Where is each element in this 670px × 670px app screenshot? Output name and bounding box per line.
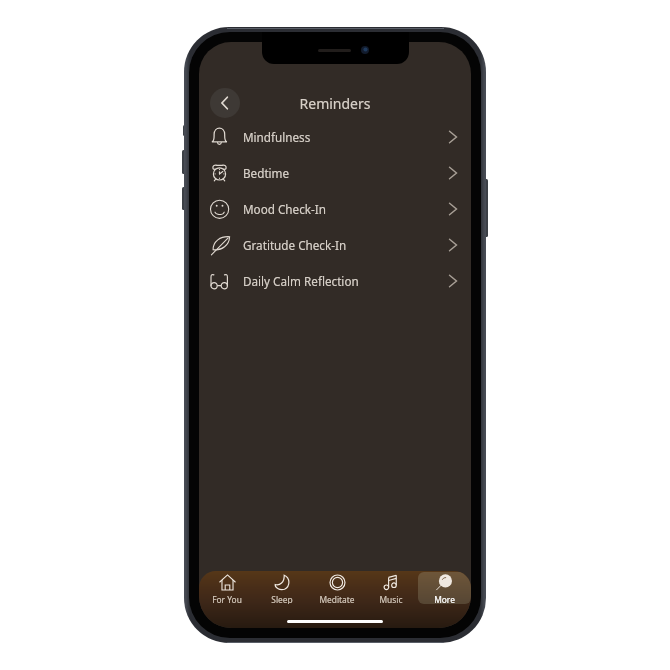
button[interactable]: Mindfulness [199,119,471,155]
button[interactable]: Sleep [255,572,309,604]
button[interactable]: Meditate [310,572,363,604]
staticText: Music [379,594,403,604]
staticText: Sleep [271,594,293,604]
button[interactable]: Bedtime [199,155,471,191]
button[interactable]: Daily Calm Reflection [199,263,471,299]
staticText: Reminders [199,94,471,113]
staticText: For You [212,594,242,604]
button[interactable]: More [418,572,471,604]
button[interactable]: Gratitude Check-In [199,227,471,263]
staticText: Meditate [319,594,355,604]
staticText: Daily Calm Reflection [243,273,359,289]
button[interactable]: Music [364,572,417,604]
staticText: Mindfulness [243,129,311,145]
button[interactable]: For You [200,572,254,604]
button[interactable]: Back [210,88,240,118]
staticText: More [434,594,455,604]
button[interactable]: Mood Check-In [199,191,471,227]
staticText: Bedtime [243,165,290,181]
staticText: Mood Check-In [243,201,326,217]
staticText: Gratitude Check-In [243,237,347,253]
